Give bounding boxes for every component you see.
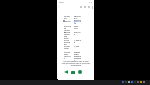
button[interactable]: Back [57, 5, 61, 9]
staticText: Purchase confirm [64, 25, 71, 34]
button[interactable]: Action [83, 5, 87, 9]
staticText: SBDH2841 9920331 [74, 15, 81, 24]
button[interactable]: Taskbar app [128, 81, 130, 83]
staticText: Seller [65, 20, 72, 23]
staticText: You may require an offer or a bill that … [59, 60, 93, 66]
button[interactable]: Taskbar app [131, 81, 133, 83]
staticText: Sent you [74, 25, 81, 30]
button[interactable]: Action [79, 5, 83, 9]
staticText: Order total [64, 45, 71, 50]
button[interactable]: Taskbar app [122, 81, 124, 83]
staticText: 1,499 [74, 45, 81, 48]
staticText: 1,299.00 [74, 39, 81, 44]
button[interactable]: Send [64, 70, 68, 74]
button[interactable]: Action [87, 5, 91, 9]
staticText: Registered mobile number [74, 51, 81, 62]
staticText: Group consume date [64, 31, 71, 40]
staticText: shop.site [74, 20, 81, 25]
button[interactable]: WhatsApp [78, 70, 82, 74]
staticText: Price included [64, 39, 71, 46]
staticText: Consumer contact [64, 51, 71, 60]
button[interactable]: Taskbar app [137, 81, 139, 83]
button[interactable]: More options [91, 5, 93, 9]
staticText: 2024-03 [74, 31, 81, 36]
button[interactable]: Message [71, 70, 75, 74]
button[interactable]: Taskbar app [140, 81, 142, 83]
staticText: Order no. [64, 15, 72, 20]
staticText: 10:24 [59, 1, 64, 3]
button[interactable]: Taskbar app [143, 81, 145, 83]
